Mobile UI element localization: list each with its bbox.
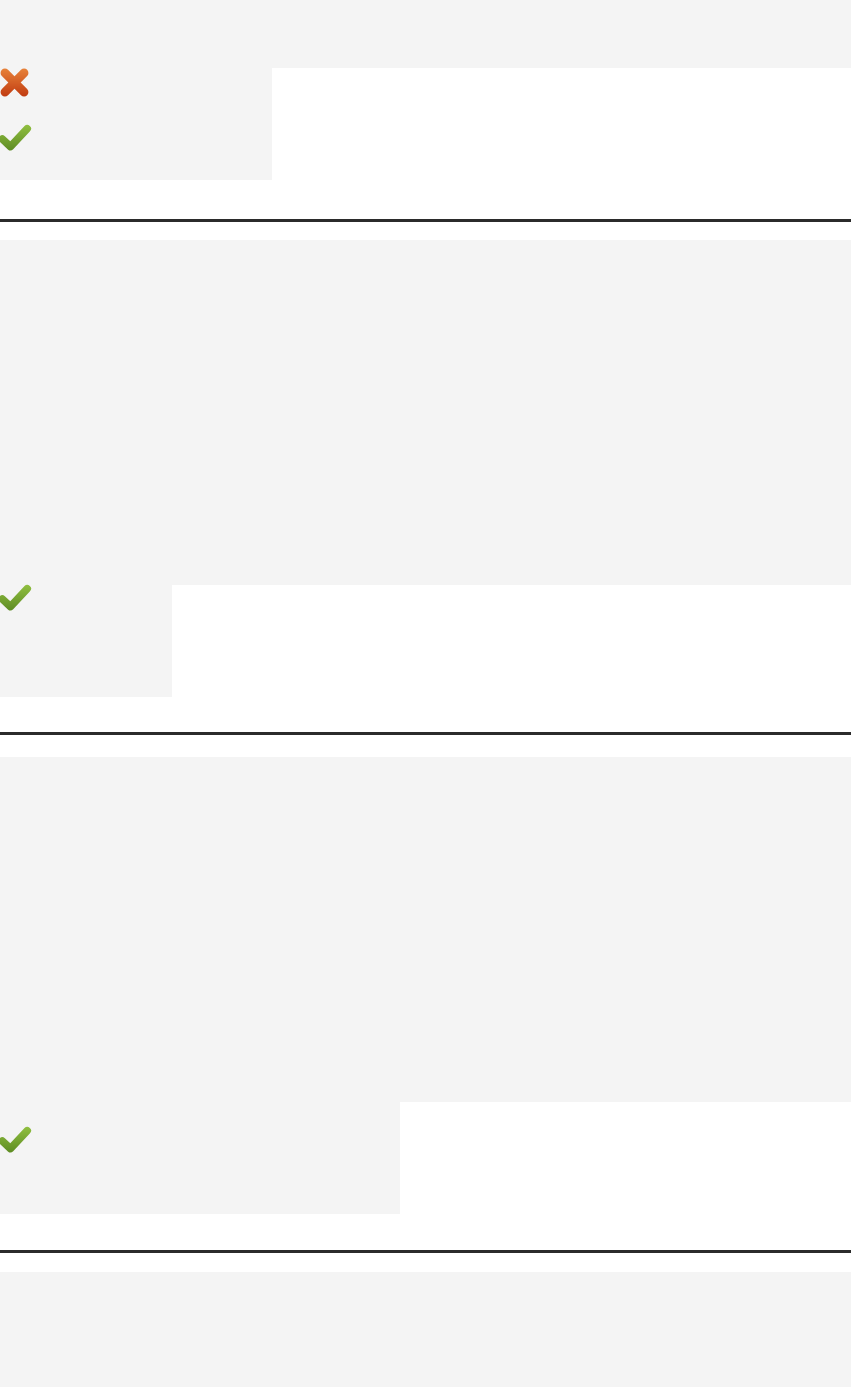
button[interactable]: Failed bbox=[0, 68, 29, 97]
button[interactable] bbox=[0, 1102, 400, 1214]
button[interactable] bbox=[0, 68, 272, 180]
button[interactable] bbox=[0, 585, 172, 697]
button[interactable]: Passed bbox=[0, 124, 29, 153]
button[interactable]: Passed bbox=[0, 584, 29, 613]
button[interactable]: Passed bbox=[0, 1126, 29, 1155]
